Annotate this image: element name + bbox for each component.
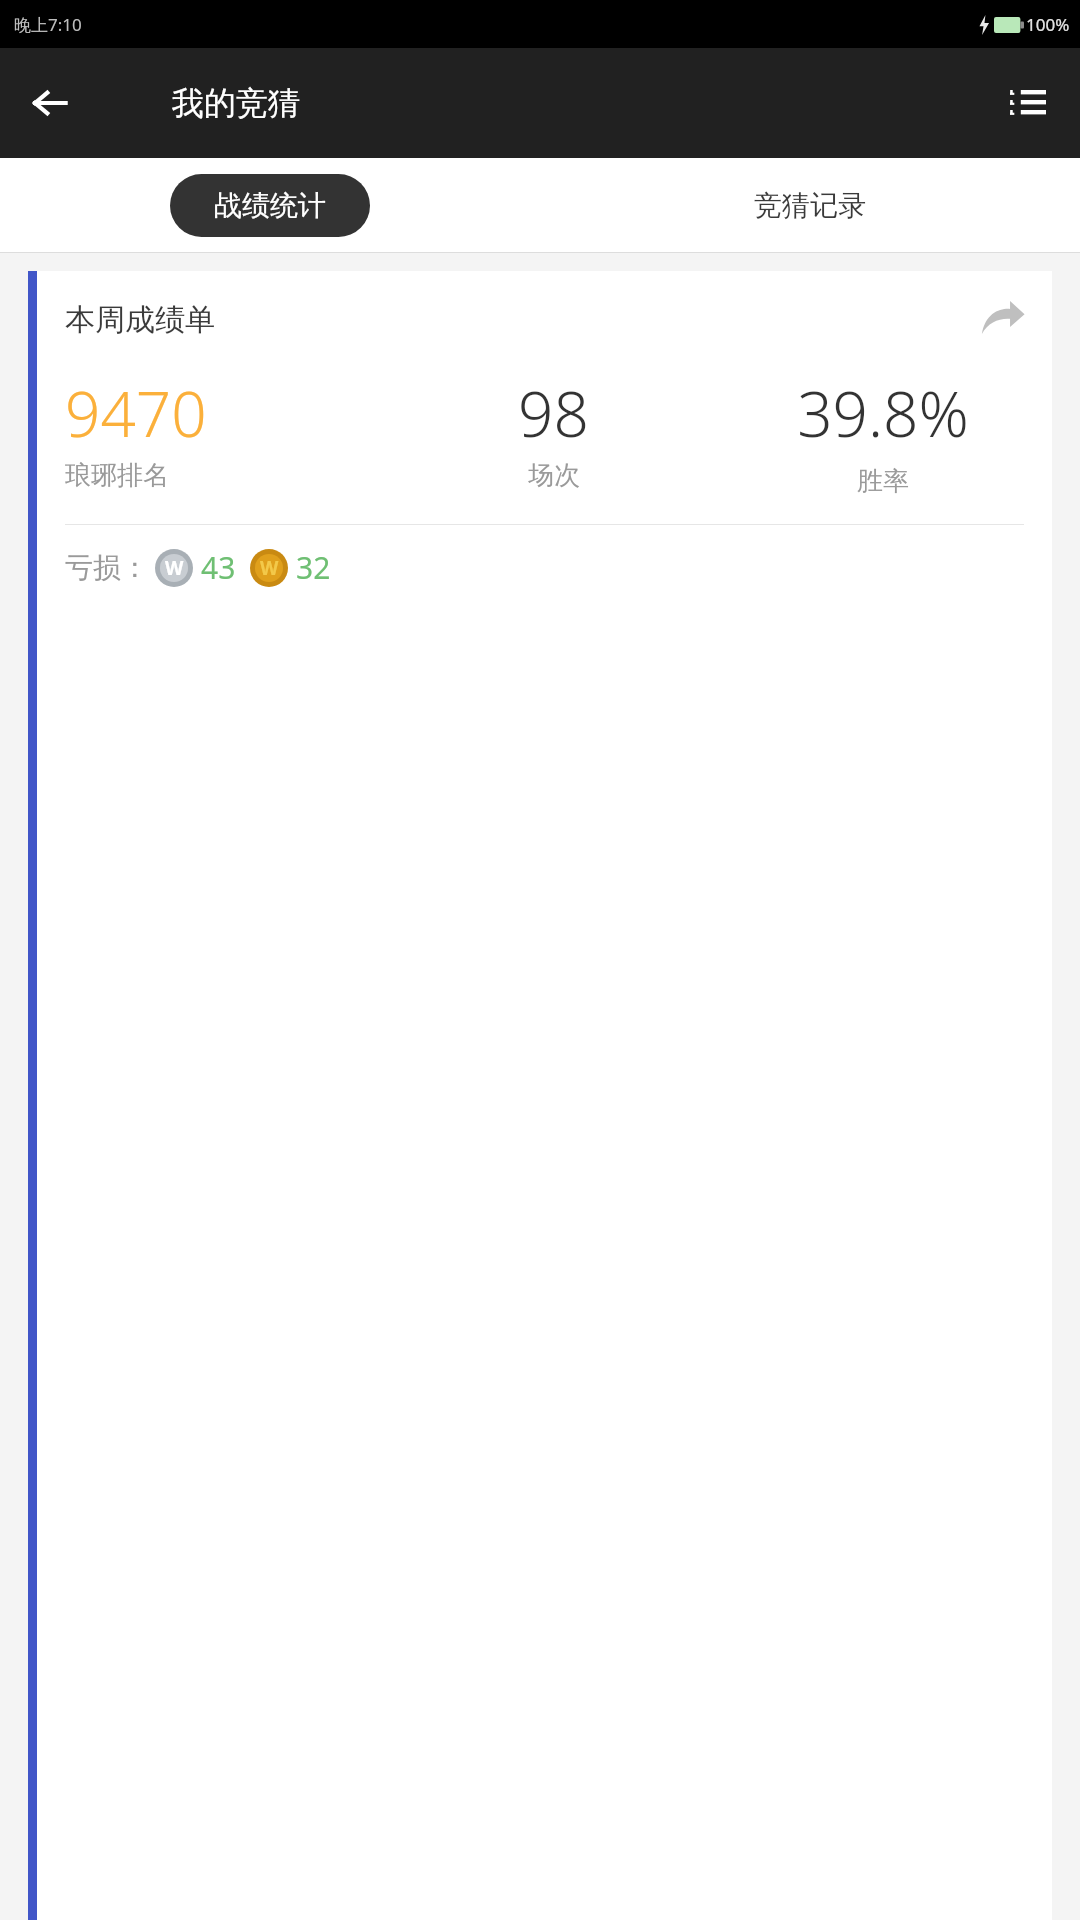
staticText: 我的竞猜 [172,83,300,123]
staticText: 32 [296,547,331,588]
staticText: W [165,555,184,581]
staticText: 100% [1026,13,1070,36]
staticText: W [260,555,279,581]
button[interactable]: Back [22,75,78,131]
staticText: 胜率 [857,465,909,498]
staticText: 39.8% [797,371,969,455]
staticText: 场次 [528,459,580,492]
button[interactable]: 战绩统计 [170,174,370,237]
button[interactable]: Share [972,287,1034,349]
staticText: 晚上7:10 [14,13,82,36]
staticText: 9470 [65,371,207,455]
button[interactable]: Ranking list [998,73,1058,133]
button[interactable]: 本周成绩单 [28,271,1052,1920]
staticText: 本周成绩单 [65,301,215,339]
staticText: 98 [518,371,589,455]
staticText: 琅琊排名 [65,459,169,492]
staticText: 亏损： [65,550,149,585]
staticText: 战绩统计 [214,188,326,223]
staticText: 43 [201,547,236,588]
staticText: 竞猜记录 [754,188,866,223]
button[interactable]: 竞猜记录 [540,158,1080,253]
